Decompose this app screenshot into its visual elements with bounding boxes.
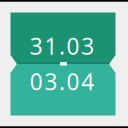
staticText: 31.03 [30, 31, 94, 61]
staticText: 03.04 [30, 66, 94, 96]
button[interactable]: 31.03 [0, 0, 128, 128]
